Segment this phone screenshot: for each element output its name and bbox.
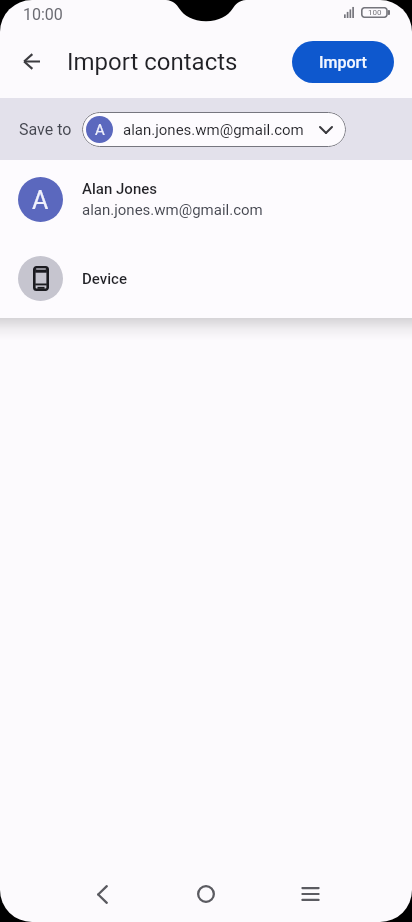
button[interactable]: Recent apps [286, 870, 334, 918]
staticText: Device [82, 270, 127, 288]
staticText: alan.jones.wm@gmail.com [123, 121, 304, 139]
staticText: A [32, 186, 49, 215]
staticText: alan.jones.wm@gmail.com [82, 201, 263, 219]
staticText: 10:00 [23, 5, 63, 24]
staticText: 100 [368, 8, 382, 17]
button[interactable]: A [82, 112, 346, 147]
staticText: Save to [19, 120, 72, 139]
staticText: Import contacts [67, 48, 238, 76]
button[interactable]: Back [10, 39, 54, 83]
button[interactable]: Import [292, 41, 394, 83]
button[interactable]: Device [0, 239, 412, 318]
button[interactable]: A [0, 160, 412, 239]
button[interactable]: Back [78, 870, 126, 918]
button[interactable]: Home [182, 870, 230, 918]
staticText: Alan Jones [82, 180, 158, 198]
staticText: A [95, 121, 105, 139]
staticText: Import [319, 53, 367, 72]
